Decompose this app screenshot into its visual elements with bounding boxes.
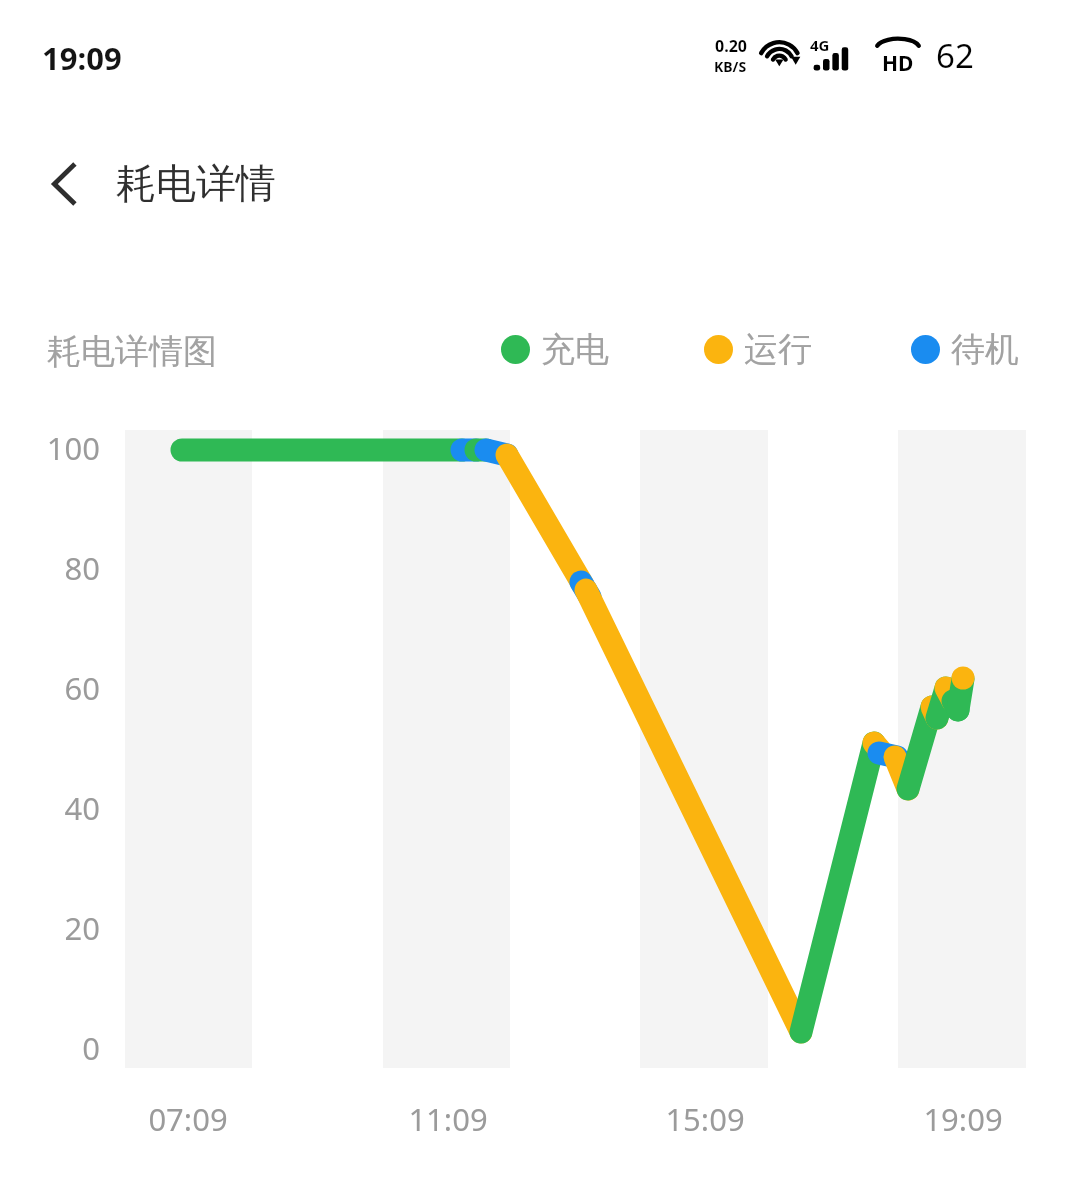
button[interactable]: 运行: [704, 328, 812, 371]
staticText: 100: [46, 427, 100, 469]
staticText: 耗电详情: [116, 158, 276, 208]
staticText: KB/S: [714, 57, 747, 76]
staticText: 60: [64, 667, 100, 709]
staticText: 62: [936, 33, 974, 78]
staticText: 待机: [951, 328, 1019, 371]
staticText: 19:09: [923, 1098, 1003, 1140]
staticText: 4G: [810, 35, 830, 55]
staticText: 15:09: [665, 1098, 745, 1140]
staticText: 07:09: [148, 1098, 228, 1140]
button[interactable]: 待机: [911, 328, 1019, 371]
staticText: 11:09: [408, 1098, 488, 1140]
staticText: 运行: [744, 328, 812, 371]
staticText: HD: [882, 49, 914, 78]
staticText: 20: [64, 907, 100, 949]
staticText: 40: [64, 787, 100, 829]
staticText: 0.20: [715, 35, 747, 57]
staticText: 19:09: [42, 37, 122, 79]
staticText: 0: [82, 1027, 100, 1069]
staticText: 耗电详情图: [47, 330, 217, 373]
button[interactable]: Back: [24, 144, 104, 224]
staticText: 充电: [541, 328, 609, 371]
button[interactable]: 充电: [501, 328, 609, 371]
staticText: 80: [64, 547, 100, 589]
